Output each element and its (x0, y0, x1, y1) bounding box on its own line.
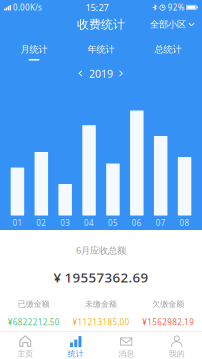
staticText: 03 (60, 218, 70, 228)
staticText: 消息 (118, 349, 134, 359)
staticText: 04 (84, 218, 94, 228)
staticText: 收费统计 (77, 17, 125, 32)
staticText: 主页 (17, 349, 33, 359)
button[interactable]: 主页 (0, 331, 50, 359)
staticText: 92% (168, 2, 185, 13)
staticText: ¥1562982.19 (142, 317, 194, 327)
button[interactable]: 全部小区 (143, 15, 202, 34)
staticText: 我的 (169, 349, 185, 359)
staticText: 02 (36, 218, 46, 228)
button[interactable]: Previous year (72, 64, 89, 83)
staticText: 月统计 (20, 44, 47, 55)
staticText: 05 (108, 218, 118, 228)
staticText: 07 (156, 218, 166, 228)
button[interactable]: 总统计 (134, 34, 201, 62)
staticText: 年统计 (87, 44, 114, 55)
staticText: 欠缴金额 (152, 299, 184, 309)
staticText: 6月应收总额 (76, 244, 126, 256)
staticText: 未缴金额 (85, 299, 117, 309)
button[interactable]: 消息 (101, 331, 151, 359)
staticText: 全部小区 (150, 19, 186, 30)
staticText: 06 (132, 218, 142, 228)
button[interactable]: 统计 (50, 331, 101, 359)
staticText: 08 (180, 218, 190, 228)
staticText: 01 (12, 218, 22, 228)
button[interactable]: 月统计 (0, 34, 67, 62)
staticText: 总统计 (154, 44, 181, 55)
staticText: ¥ 19557362.69 (53, 268, 148, 286)
staticText: ¥6822212.50 (8, 317, 60, 327)
staticText: 0.00K/s (13, 2, 42, 13)
staticText: 2019 (89, 66, 113, 81)
button[interactable]: Next year (113, 64, 130, 83)
button[interactable]: 年统计 (67, 34, 134, 62)
staticText: ¥11213185.00 (72, 317, 129, 327)
staticText: 已缴金额 (18, 299, 50, 309)
staticText: 15:27 (86, 1, 109, 14)
staticText: 统计 (68, 349, 84, 359)
button[interactable]: 我的 (151, 331, 202, 359)
